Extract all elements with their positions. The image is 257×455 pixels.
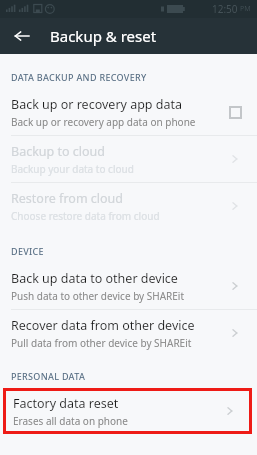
button[interactable]: Recover data from other device (0, 310, 257, 356)
staticText: PM (240, 4, 251, 14)
button[interactable]: Backup to cloud (0, 136, 257, 182)
staticText: Backup to cloud (11, 143, 106, 160)
staticText: Restore from cloud (11, 190, 124, 207)
staticText: PERSONAL DATA (11, 370, 86, 382)
staticText: Back up data to other device (11, 270, 178, 287)
staticText: Backup & reset (50, 26, 157, 46)
staticText: Pull data from other device by SHAREit (11, 336, 192, 350)
staticText: DEVICE (11, 245, 44, 257)
button[interactable]: Back (10, 24, 34, 48)
staticText: Back up or recovery app data on phone (11, 115, 196, 129)
staticText: DATA BACKUP AND RECOVERY (11, 71, 147, 83)
button[interactable]: Factory data reset (3, 388, 252, 434)
staticText: 12:50 (212, 2, 238, 16)
button[interactable]: Back up data to other device (0, 263, 257, 309)
staticText: Erases all data on phone (13, 414, 128, 428)
button[interactable]: Restore from cloud (0, 183, 257, 229)
staticText: Back up or recovery app data (11, 96, 183, 113)
staticText: Recover data from other device (11, 317, 195, 334)
button[interactable]: Back up or recovery app data (0, 89, 257, 135)
staticText: Factory data reset (13, 395, 119, 412)
staticText: Choose restore data from cloud (11, 209, 160, 223)
staticText: Push data to other device by SHAREit (11, 289, 185, 303)
staticText: Backup your data to cloud (11, 162, 134, 176)
button[interactable]: Back up or recovery app data toggle (229, 106, 242, 119)
